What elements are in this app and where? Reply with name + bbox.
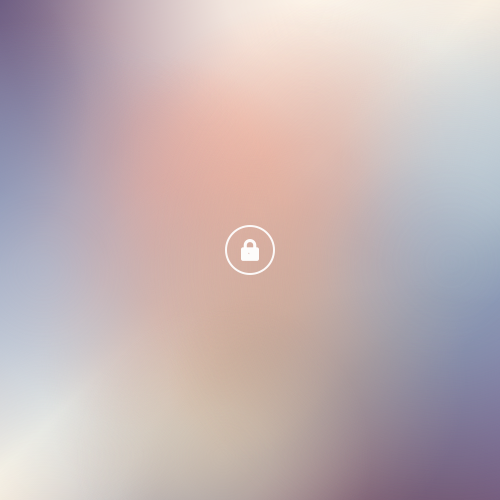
button[interactable]: Locked xyxy=(214,214,286,286)
